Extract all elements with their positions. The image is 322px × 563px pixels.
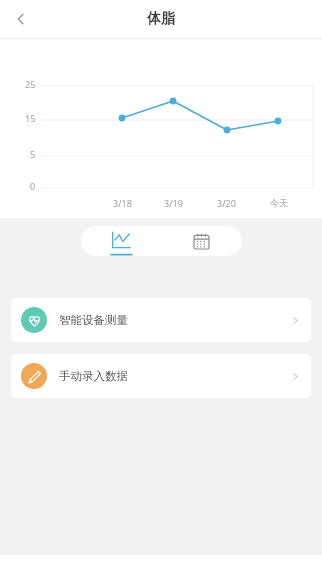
- staticText: 3/20: [217, 197, 236, 209]
- staticText: 25: [25, 78, 36, 90]
- staticText: 5: [30, 148, 36, 160]
- staticText: 智能设备测量: [59, 313, 128, 327]
- button[interactable]: 智能设备测量: [11, 298, 311, 342]
- staticText: 3/18: [113, 197, 132, 209]
- staticText: 0: [30, 180, 36, 192]
- button[interactable]: 手动录入数据: [11, 354, 311, 398]
- button[interactable]: Chart view: [81, 226, 161, 256]
- staticText: 15: [25, 112, 36, 124]
- staticText: 体脂: [147, 10, 175, 28]
- staticText: 今天: [270, 197, 288, 208]
- button[interactable]: Back: [0, 0, 42, 38]
- staticText: 手动录入数据: [59, 369, 128, 383]
- staticText: 3/19: [164, 197, 183, 209]
- button[interactable]: Calendar view: [161, 226, 242, 256]
